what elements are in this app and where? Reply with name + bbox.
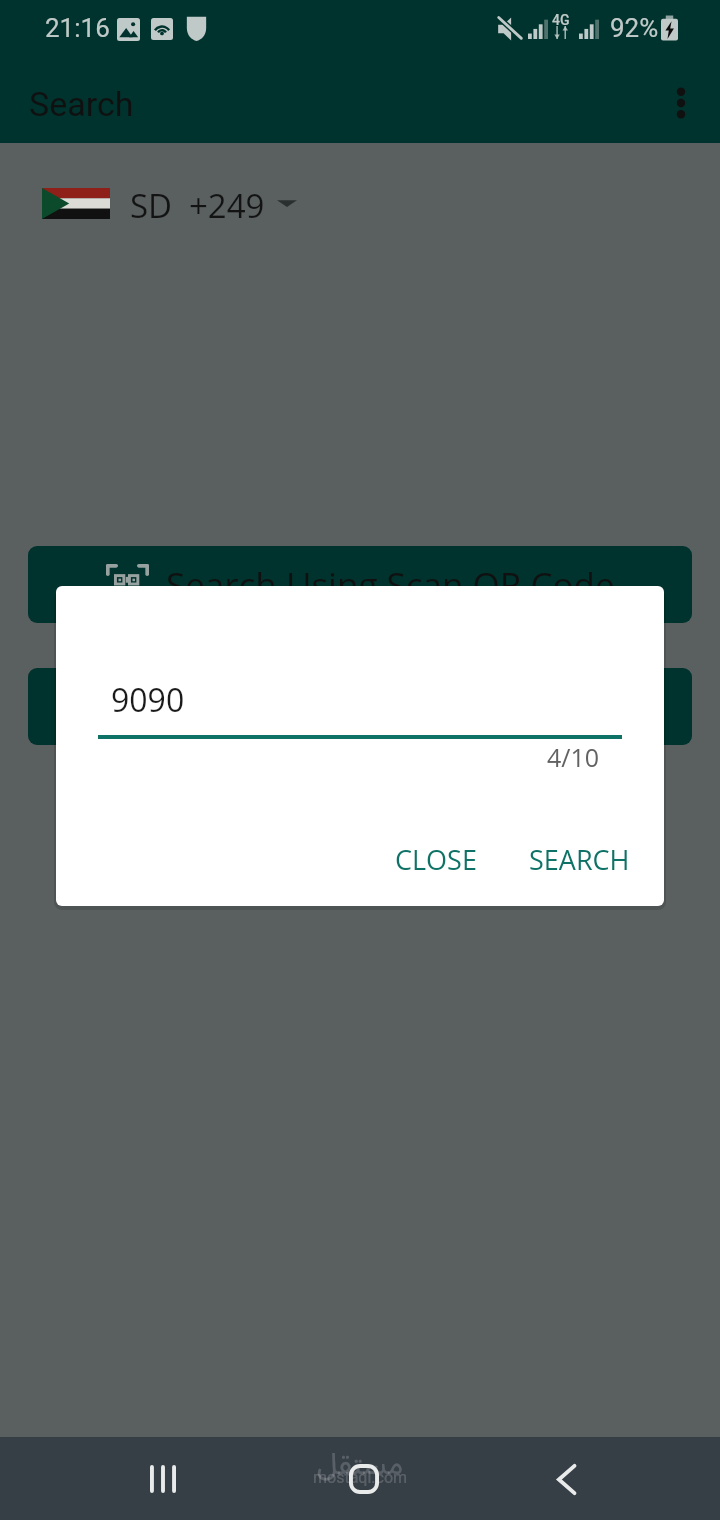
staticText: +249 [189,183,265,223]
staticText: 4G [552,12,570,28]
button[interactable]: SD [42,183,720,223]
button[interactable]: Search Using Scan QR Code [28,546,692,623]
button[interactable]: Recents [126,1442,200,1516]
button[interactable]: Back [529,1442,603,1516]
staticText: SD [130,183,173,223]
staticText: Search [29,84,134,124]
button[interactable] [28,668,692,745]
staticText: مستقل [317,1434,404,1495]
staticText: CLOSE [395,841,477,878]
button[interactable]: More options [653,75,709,131]
button[interactable]: SEARCH [513,828,646,891]
staticText: mostaql.com [313,1468,408,1487]
staticText: 9090 [111,678,185,722]
staticText: 4/10 [547,740,600,774]
staticText: Search Using Scan QR Code [166,561,615,609]
staticText: 92% [610,13,659,43]
staticText: 21:16 [45,13,110,43]
button[interactable]: CLOSE [379,828,493,891]
button[interactable]: Home [327,1442,401,1516]
staticText: SEARCH [529,841,630,878]
